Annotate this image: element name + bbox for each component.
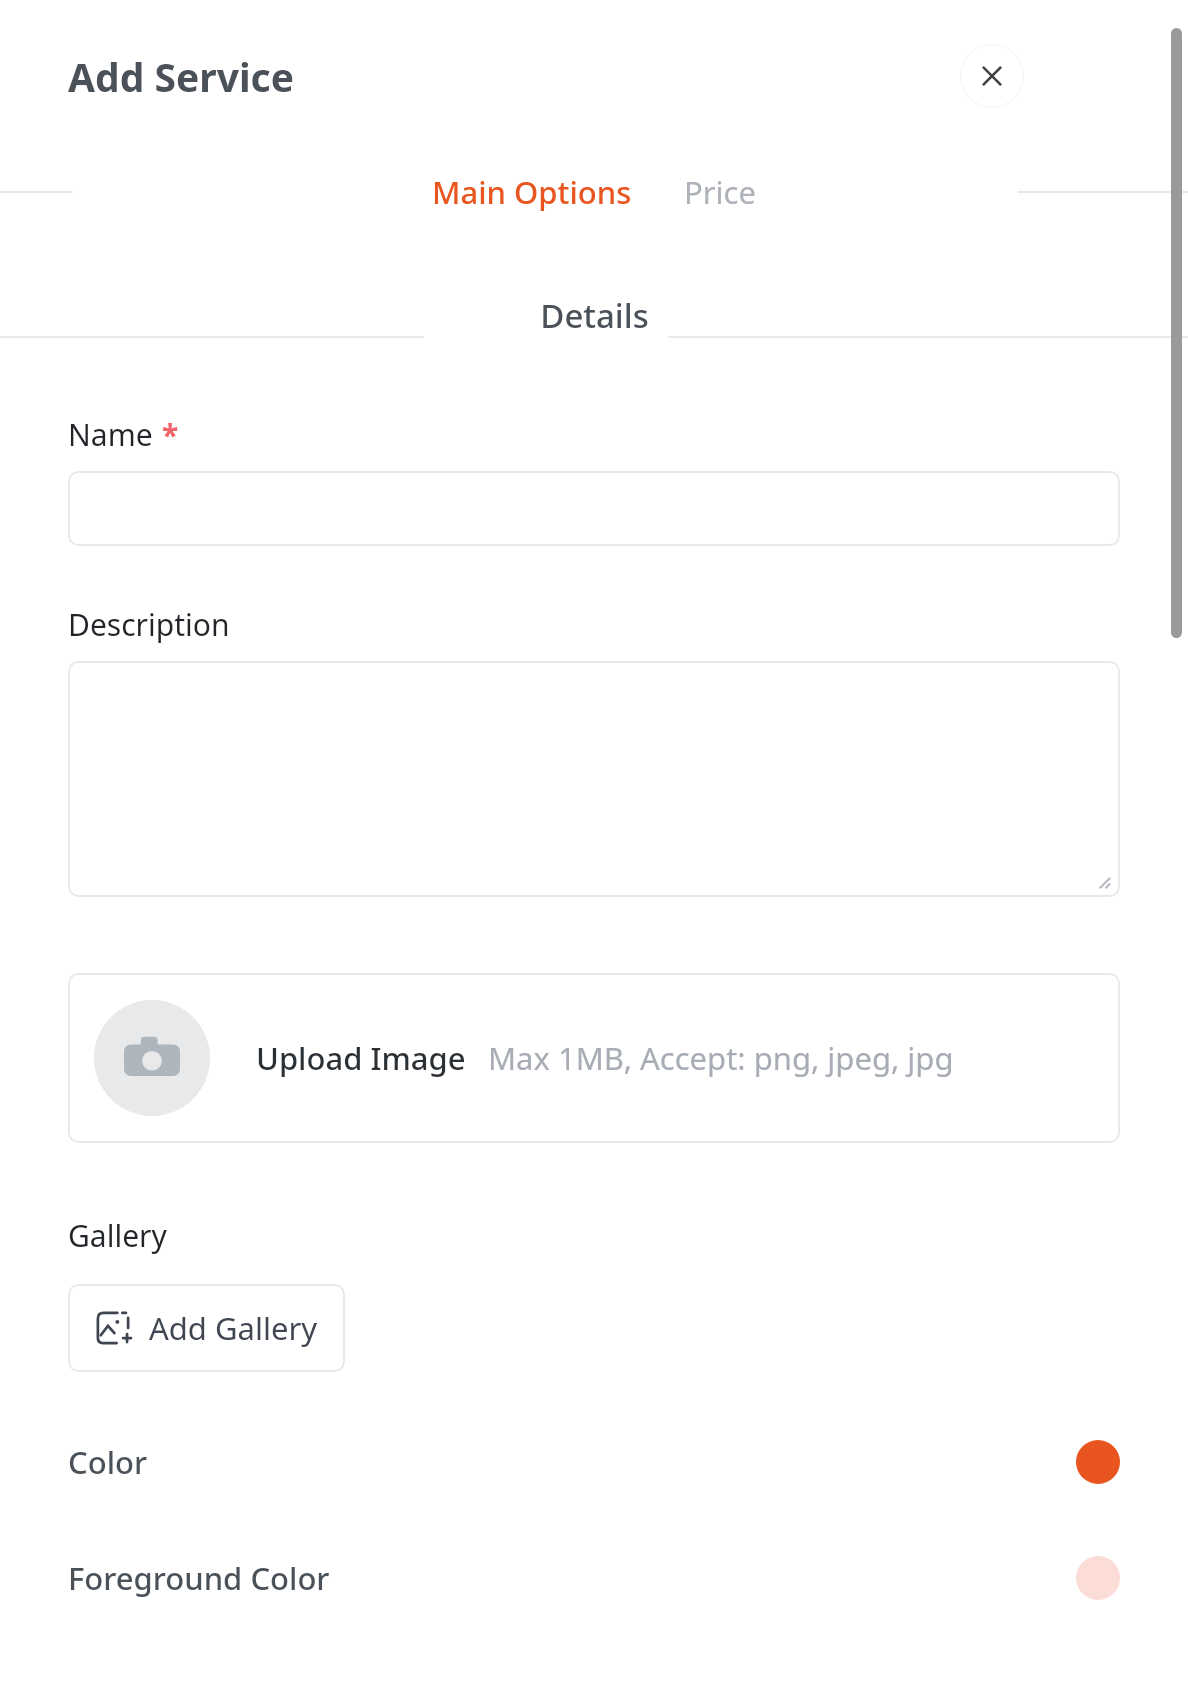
staticText: Name [68, 414, 153, 455]
staticText: Add Gallery [149, 1307, 318, 1349]
staticText: Foreground Color [68, 1557, 330, 1599]
staticText: Add Service [68, 50, 294, 103]
button[interactable]: Close [960, 44, 1024, 108]
staticText: Color [68, 1441, 148, 1483]
staticText: Main Options [432, 171, 632, 213]
button[interactable]: Add Gallery [68, 1284, 345, 1372]
staticText: Price [684, 171, 756, 213]
button[interactable]: Price [678, 161, 762, 223]
button[interactable]: Foreground Color [68, 1550, 1120, 1606]
staticText: Upload Image [256, 1037, 466, 1079]
staticText: Max 1MB, Accept: png, jpeg, jpg [488, 1037, 954, 1079]
button[interactable] [68, 471, 1120, 546]
button[interactable] [68, 661, 1120, 897]
button[interactable]: Upload Image [68, 973, 1120, 1143]
button[interactable]: Main Options [426, 161, 638, 223]
staticText: Description [68, 604, 230, 645]
button[interactable]: Color [68, 1434, 1120, 1490]
staticText: Gallery [68, 1215, 167, 1256]
staticText: Details [540, 293, 649, 338]
staticText: * [162, 414, 179, 455]
